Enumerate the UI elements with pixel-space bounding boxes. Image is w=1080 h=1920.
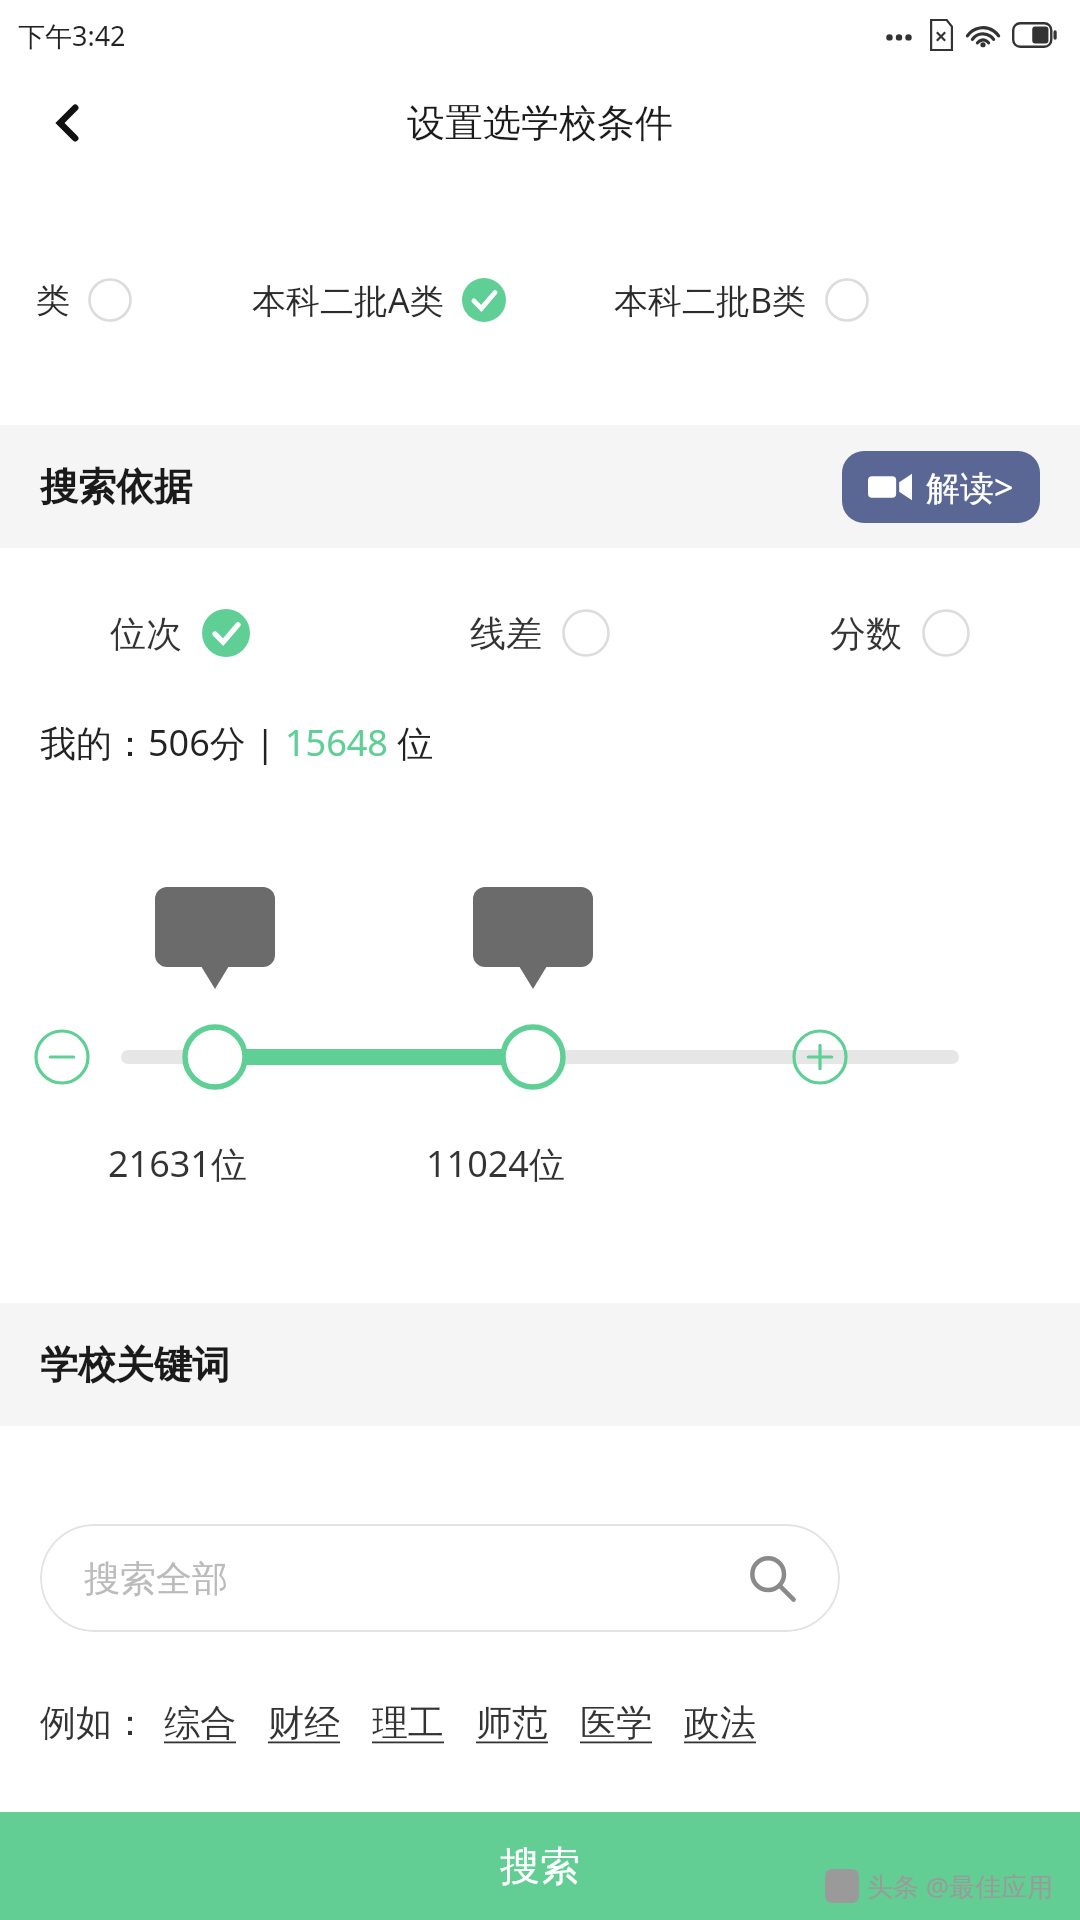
button[interactable]: 医学: [564, 1694, 668, 1751]
staticText: 财经: [268, 1700, 340, 1745]
button[interactable]: 综合: [148, 1694, 252, 1751]
button[interactable]: 理工: [356, 1694, 460, 1751]
staticText: 头条 @最佳应用: [867, 1868, 1054, 1904]
staticText: 搜索: [500, 1841, 580, 1891]
staticText: 类: [36, 279, 70, 322]
staticText: 医学: [580, 1700, 652, 1745]
button[interactable]: 搜索: [0, 1812, 1080, 1920]
staticText: 11024位: [426, 1139, 565, 1188]
staticText: 我的：506分 |: [40, 718, 285, 767]
staticText: 搜索全部: [84, 1556, 228, 1601]
staticText: 15648: [285, 718, 388, 767]
staticText: 政法: [684, 1700, 756, 1745]
staticText: 位次: [110, 611, 182, 656]
button[interactable]: 财经: [252, 1694, 356, 1751]
staticText: 解读>: [926, 464, 1014, 510]
staticText: 综合: [164, 1700, 236, 1745]
button[interactable]: 解读>: [842, 451, 1040, 523]
staticText: 师范: [476, 1700, 548, 1745]
staticText: 设置选学校条件: [407, 99, 673, 147]
button[interactable]: Back: [28, 83, 108, 163]
button[interactable]: 师范: [460, 1694, 564, 1751]
staticText: 分数: [830, 611, 902, 656]
staticText: 位: [388, 718, 434, 767]
staticText: 例如：: [40, 1700, 148, 1745]
staticText: 理工: [372, 1700, 444, 1745]
staticText: 线差: [470, 611, 542, 656]
staticText: 学校关键词: [40, 1341, 230, 1389]
button[interactable]: 位次: [0, 588, 360, 678]
staticText: 下午3:42: [18, 17, 126, 54]
staticText: 本科二批A类: [252, 277, 444, 323]
button[interactable]: 政法: [668, 1694, 772, 1751]
staticText: 21631位: [108, 1139, 247, 1188]
button[interactable]: 类: [36, 278, 132, 322]
button[interactable]: 线差: [360, 588, 720, 678]
staticText: 本科二批B类: [614, 277, 807, 323]
button[interactable]: 分数: [720, 588, 1080, 678]
staticText: 搜索依据: [40, 463, 192, 511]
button[interactable]: 搜索全部: [40, 1524, 840, 1632]
button[interactable]: 本科二批B类: [614, 277, 869, 323]
button[interactable]: 本科二批A类: [252, 277, 506, 323]
